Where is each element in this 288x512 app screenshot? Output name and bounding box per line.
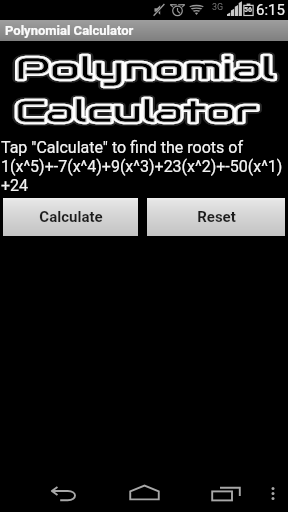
staticText: Calculator bbox=[15, 92, 259, 130]
staticText: Calculator bbox=[15, 92, 259, 130]
staticText: Calculate bbox=[39, 208, 103, 226]
staticText: Calculator bbox=[15, 92, 259, 130]
staticText: 56 bbox=[244, 6, 253, 14]
staticText: Polynomial bbox=[15, 49, 276, 87]
button[interactable]: Calculate bbox=[3, 198, 138, 236]
button[interactable]: Recent apps bbox=[202, 476, 250, 510]
button[interactable]: Reset bbox=[147, 198, 285, 236]
staticText: Polynomial bbox=[15, 49, 276, 87]
staticText: 3G bbox=[212, 2, 224, 13]
staticText: 6:15 bbox=[256, 1, 285, 19]
button[interactable]: Home bbox=[120, 475, 168, 509]
staticText: Polynomial bbox=[15, 49, 276, 87]
staticText: Polynomial bbox=[15, 49, 276, 87]
button[interactable]: More options bbox=[263, 476, 283, 510]
staticText: Polynomial Calculator bbox=[5, 23, 134, 38]
staticText: Tap "Calculate" to find the roots of 1(x… bbox=[1, 138, 283, 195]
staticText: Reset bbox=[197, 208, 236, 226]
staticText: Calculator bbox=[15, 92, 259, 130]
button[interactable]: Back bbox=[40, 476, 88, 510]
